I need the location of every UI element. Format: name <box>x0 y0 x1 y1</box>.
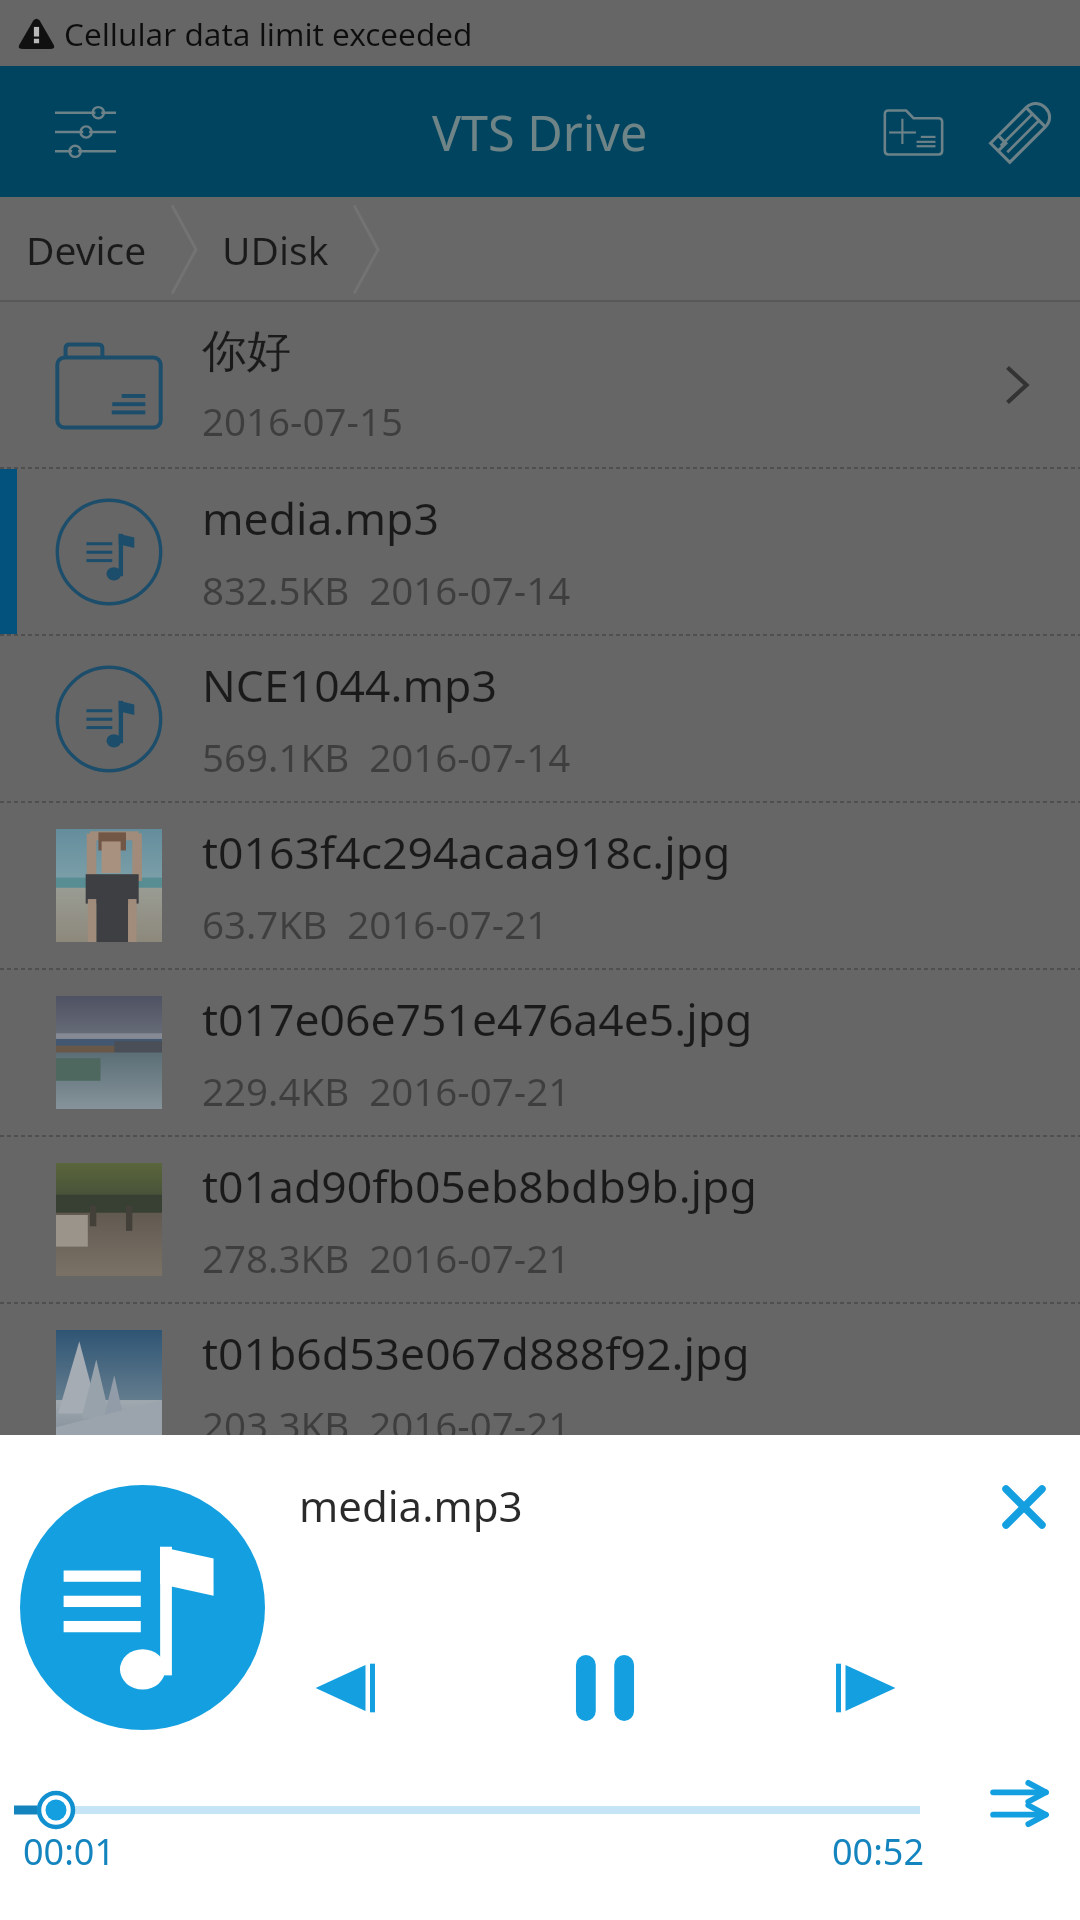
staticText: 63.7KB 2016-07-21 <box>202 898 549 950</box>
button[interactable]: Next <box>811 1633 921 1743</box>
button[interactable]: NCE1044.mp3 <box>0 636 1080 801</box>
staticText: t017e06e751e476a4e5.jpg <box>202 988 753 1049</box>
button[interactable]: t01ad90fb05eb8bdb9b.jpg <box>0 1137 1080 1302</box>
staticText: t01ad90fb05eb8bdb9b.jpg <box>202 1155 757 1216</box>
button[interactable]: t017e06e751e476a4e5.jpg <box>0 970 1080 1135</box>
button[interactable]: Device <box>0 197 171 302</box>
button[interactable]: UDisk <box>197 197 353 302</box>
button[interactable]: t0163f4c294acaa918c.jpg <box>0 803 1080 968</box>
button[interactable]: Repeat mode <box>969 1753 1069 1853</box>
button[interactable]: Previous <box>290 1633 400 1743</box>
staticText: t0163f4c294acaa918c.jpg <box>202 821 731 882</box>
staticText: 00:52 <box>832 1827 925 1876</box>
staticText: 229.4KB 2016-07-21 <box>202 1065 571 1117</box>
button[interactable]: Open folder <box>977 345 1057 425</box>
button[interactable]: Edit <box>968 77 1078 187</box>
staticText: media.mp3 <box>202 487 439 548</box>
staticText: Device <box>26 223 147 276</box>
staticText: 00:01 <box>23 1827 116 1876</box>
staticText: NCE1044.mp3 <box>202 654 497 715</box>
staticText: UDisk <box>222 223 329 276</box>
staticText: media.mp3 <box>299 1477 523 1534</box>
button[interactable]: Close <box>977 1460 1071 1554</box>
staticText: VTS Drive <box>432 99 648 165</box>
staticText: 832.5KB 2016-07-14 <box>202 564 571 616</box>
staticText: 2016-07-15 <box>202 395 403 447</box>
button[interactable]: Pause <box>550 1633 660 1743</box>
staticText: Cellular data limit exceeded <box>64 12 473 55</box>
staticText: 569.1KB 2016-07-14 <box>202 731 571 783</box>
button[interactable]: media.mp3 <box>0 469 1080 634</box>
button[interactable]: 你好 <box>0 302 1080 467</box>
button[interactable]: Sort options <box>37 84 133 180</box>
staticText: t01b6d53e067d888f92.jpg <box>202 1322 750 1383</box>
staticText: 203.3KB 2016-07-21 <box>202 1399 571 1451</box>
staticText: 278.3KB 2016-07-21 <box>202 1232 571 1284</box>
button[interactable]: t01b6d53e067d888f92.jpg <box>0 1304 1080 1469</box>
button[interactable]: Album art <box>20 1485 265 1730</box>
button[interactable]: New folder <box>858 77 968 187</box>
staticText: 你好 <box>202 323 291 379</box>
